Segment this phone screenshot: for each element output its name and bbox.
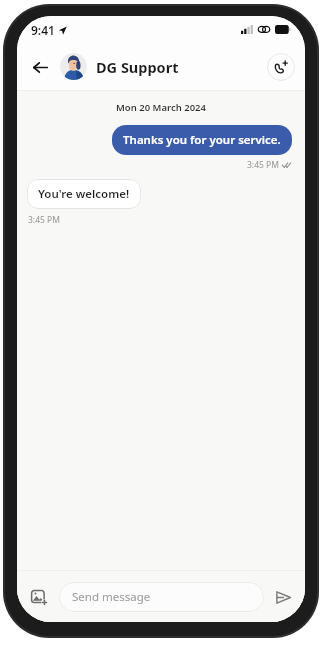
staticText: You're welcome! bbox=[38, 186, 130, 202]
button[interactable]: Thanks you for your service. bbox=[112, 125, 292, 155]
button[interactable]: Send bbox=[270, 584, 296, 610]
button[interactable]: DG Support avatar bbox=[60, 53, 87, 80]
button[interactable]: Send message bbox=[59, 582, 264, 612]
staticText: 3:45 PM bbox=[28, 214, 60, 226]
staticText: DG Support bbox=[96, 57, 267, 77]
button[interactable]: Attach image bbox=[26, 584, 52, 610]
staticText: Mon 20 March 2024 bbox=[17, 101, 305, 114]
staticText: Thanks you for your service. bbox=[123, 132, 281, 148]
staticText: 9:41 bbox=[31, 22, 55, 38]
button[interactable]: Start call bbox=[267, 53, 295, 81]
button[interactable]: You're welcome! bbox=[27, 179, 141, 209]
staticText: 3:45 PM bbox=[247, 159, 279, 171]
button[interactable]: Back bbox=[27, 54, 53, 80]
staticText: Send message bbox=[72, 589, 151, 605]
